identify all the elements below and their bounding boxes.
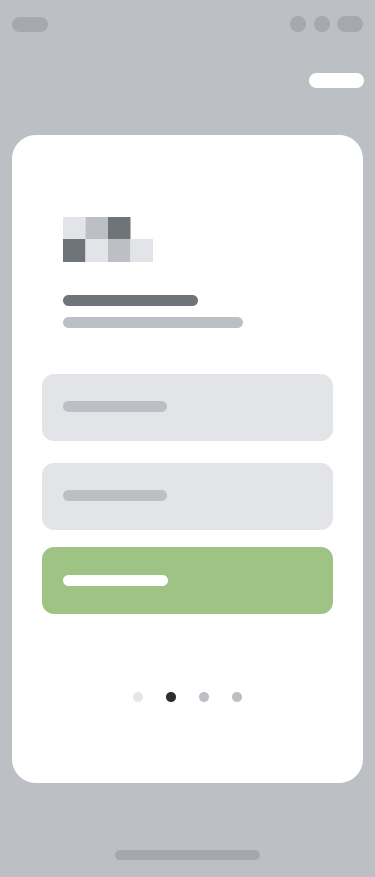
button[interactable]: Text field <box>42 463 333 530</box>
button[interactable]: Page 1 <box>133 692 143 702</box>
button[interactable]: Continue <box>42 547 333 614</box>
button[interactable]: Skip <box>309 73 364 88</box>
button[interactable]: Page 2 <box>166 692 176 702</box>
button[interactable]: Page 4 <box>232 692 242 702</box>
button[interactable]: Page 3 <box>199 692 209 702</box>
button[interactable]: Text field <box>42 374 333 441</box>
